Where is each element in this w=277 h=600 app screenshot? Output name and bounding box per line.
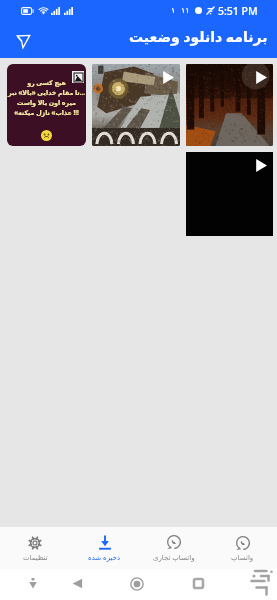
other: Brand: [249, 567, 274, 597]
staticText: واتساپ تجاری: [153, 553, 195, 563]
button[interactable]: واتساپ تجاری: [139, 529, 208, 568]
button[interactable]: Play: [186, 152, 273, 236]
staticText: ١١: [181, 6, 190, 15]
button[interactable]: Play: [92, 64, 180, 146]
button[interactable]: واتساپ: [208, 530, 277, 567]
other: Play: [162, 71, 174, 84]
staticText: هیچ کسی رو تا مقام خدایی «بالا» نبر... م…: [7, 78, 86, 117]
button[interactable]: Share to Telegram: [10, 28, 36, 54]
button[interactable]: Home: [130, 577, 144, 591]
button[interactable]: هیچ کسی رو تا مقام خدایی «بالا» نبر... م…: [7, 64, 86, 146]
button[interactable]: ذخیره شده: [70, 529, 139, 568]
button[interactable]: Play: [186, 64, 273, 146]
button[interactable]: Recents: [194, 579, 203, 588]
button[interactable]: Back: [72, 578, 83, 589]
staticText: ١: [171, 6, 176, 15]
staticText: 5:51 PM: [218, 4, 258, 18]
other: Play: [255, 159, 267, 172]
staticText: برنامه دانلود وضعیت: [129, 27, 268, 46]
other: Play: [255, 71, 267, 84]
staticText: تنظیمات: [23, 554, 48, 562]
staticText: ذخیره شده: [88, 553, 121, 563]
button[interactable]: Hide keyboard: [28, 578, 38, 589]
button[interactable]: تنظیمات: [0, 530, 70, 567]
staticText: واتساپ: [231, 554, 254, 562]
